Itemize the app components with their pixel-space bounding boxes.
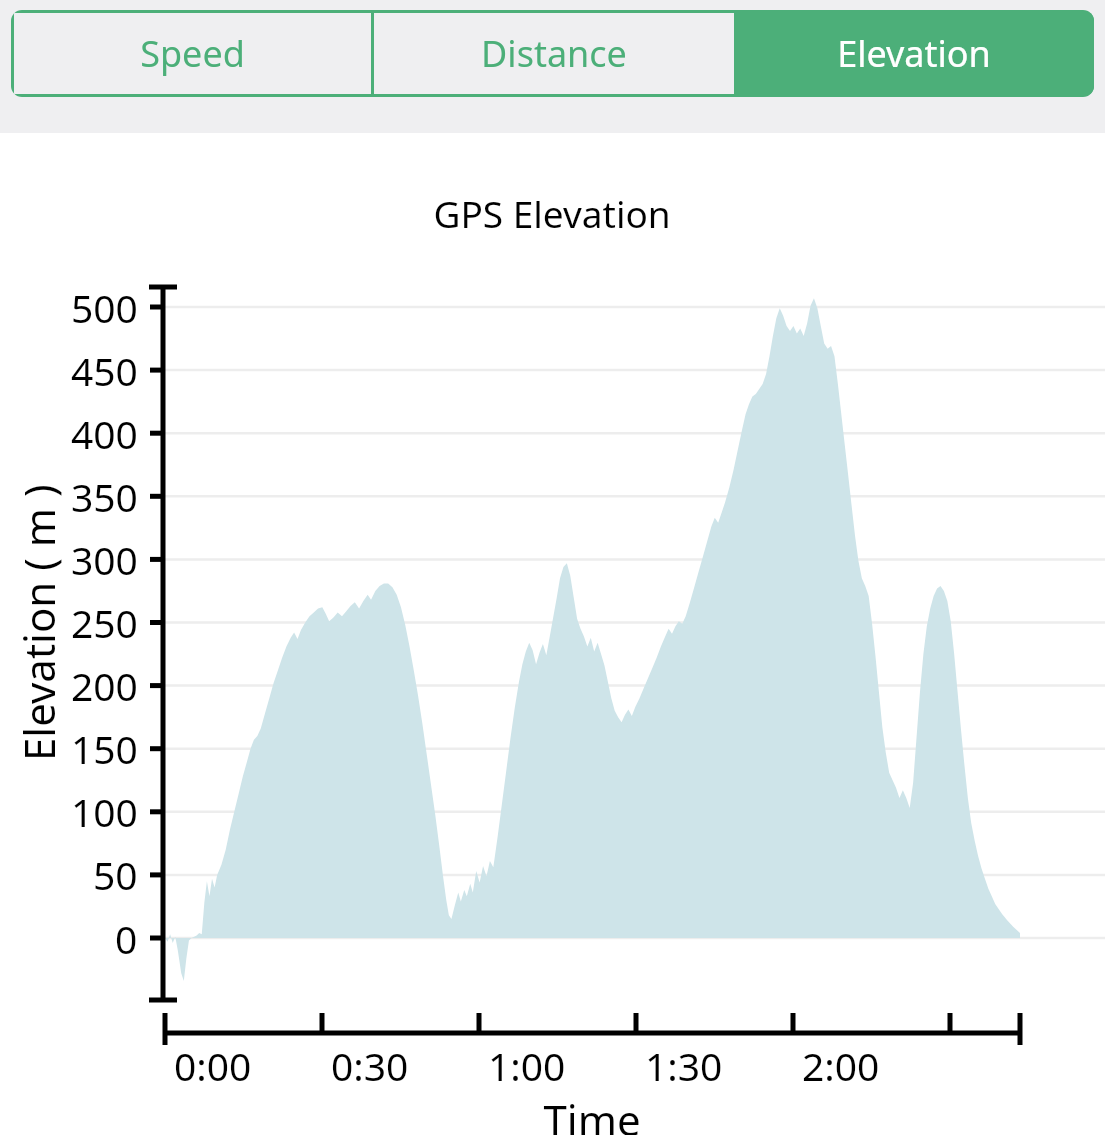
button[interactable]: Speed <box>14 13 371 94</box>
staticText: Elevation <box>837 29 991 78</box>
button[interactable]: Elevation <box>734 13 1094 94</box>
button[interactable]: Distance <box>374 13 734 94</box>
staticText: Speed <box>140 29 245 78</box>
staticText: Distance <box>481 29 627 78</box>
